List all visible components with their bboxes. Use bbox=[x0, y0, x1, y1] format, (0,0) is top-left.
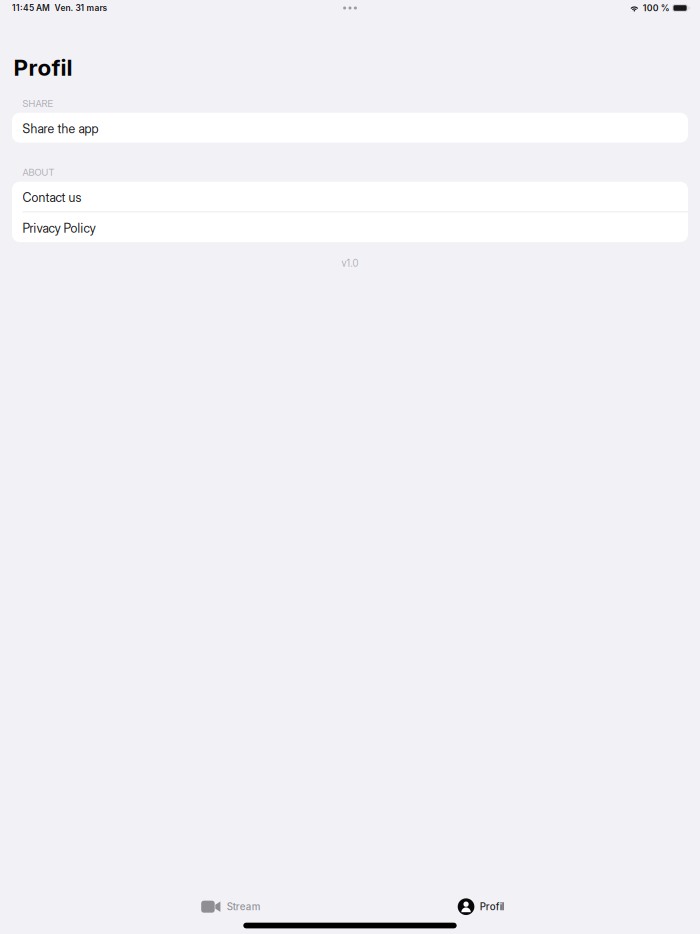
staticText: Stream bbox=[227, 901, 261, 913]
staticText: Profil bbox=[14, 54, 73, 81]
staticText: Profil bbox=[480, 901, 504, 913]
staticText: Share the app bbox=[23, 121, 99, 136]
button[interactable]: Privacy Policy bbox=[12, 212, 688, 242]
button[interactable]: Stream bbox=[201, 901, 261, 913]
button[interactable]: Profil bbox=[458, 898, 504, 915]
button[interactable]: Share the app bbox=[12, 113, 688, 143]
staticText: Contact us bbox=[23, 190, 82, 205]
staticText: Ven. 31 mars bbox=[54, 3, 107, 13]
staticText: 100 % bbox=[643, 3, 670, 13]
button[interactable]: Contact us bbox=[12, 182, 688, 211]
staticText: 11:45 AM bbox=[12, 3, 50, 13]
staticText: v1.0 bbox=[341, 257, 358, 269]
staticText: SHARE bbox=[23, 98, 53, 109]
staticText: Privacy Policy bbox=[23, 221, 96, 236]
staticText: ABOUT bbox=[23, 167, 55, 178]
